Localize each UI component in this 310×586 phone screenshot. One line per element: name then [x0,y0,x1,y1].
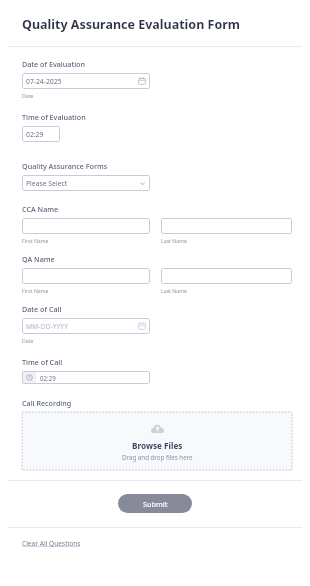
staticText: First Name [22,237,49,244]
staticText: 02:29 [40,374,56,382]
button[interactable]: Pick date [138,322,146,330]
staticText: Last Name [161,287,187,294]
button[interactable]: Browse Files [22,412,292,470]
staticText: Submit [143,499,168,509]
button[interactable] [161,218,292,234]
staticText: Date [22,337,34,344]
staticText: Date of Call [22,304,62,314]
staticText: Last Name [161,237,187,244]
button[interactable] [161,268,292,284]
staticText: 07-24-2025 [26,77,138,86]
staticText: Please Select [26,179,139,188]
staticText: Quality Assurance Forms [22,161,108,171]
staticText: Drag and drop files here [122,453,193,461]
staticText: QA Name [22,254,55,264]
staticText: Quality Assurance Evaluation Form [22,16,240,33]
button[interactable]: 02:29 [22,126,60,142]
staticText: MM-DD-YYYY [26,322,138,331]
other: Open dropdown [139,180,146,187]
button[interactable] [22,268,150,284]
staticText: Time of Call [22,357,63,367]
staticText: Date [22,92,34,99]
button[interactable]: Submit [118,494,192,513]
button[interactable]: Pick date [138,77,146,85]
button[interactable]: Clear All Questions [22,539,81,548]
staticText: Browse Files [132,440,183,451]
staticText: Call Recording [22,398,72,408]
button[interactable]: MM-DD-YYYY [22,318,150,334]
button[interactable] [22,218,150,234]
button[interactable]: Please Select [22,175,150,191]
staticText: Date of Evaluation [22,59,85,69]
staticText: First Name [22,287,49,294]
button[interactable]: 02:29 [22,371,150,384]
staticText: CCA Name [22,204,59,214]
button[interactable]: 07-24-2025 [22,73,150,89]
staticText: Time of Evaluation [22,112,86,122]
staticText: 02:29 [26,130,56,139]
